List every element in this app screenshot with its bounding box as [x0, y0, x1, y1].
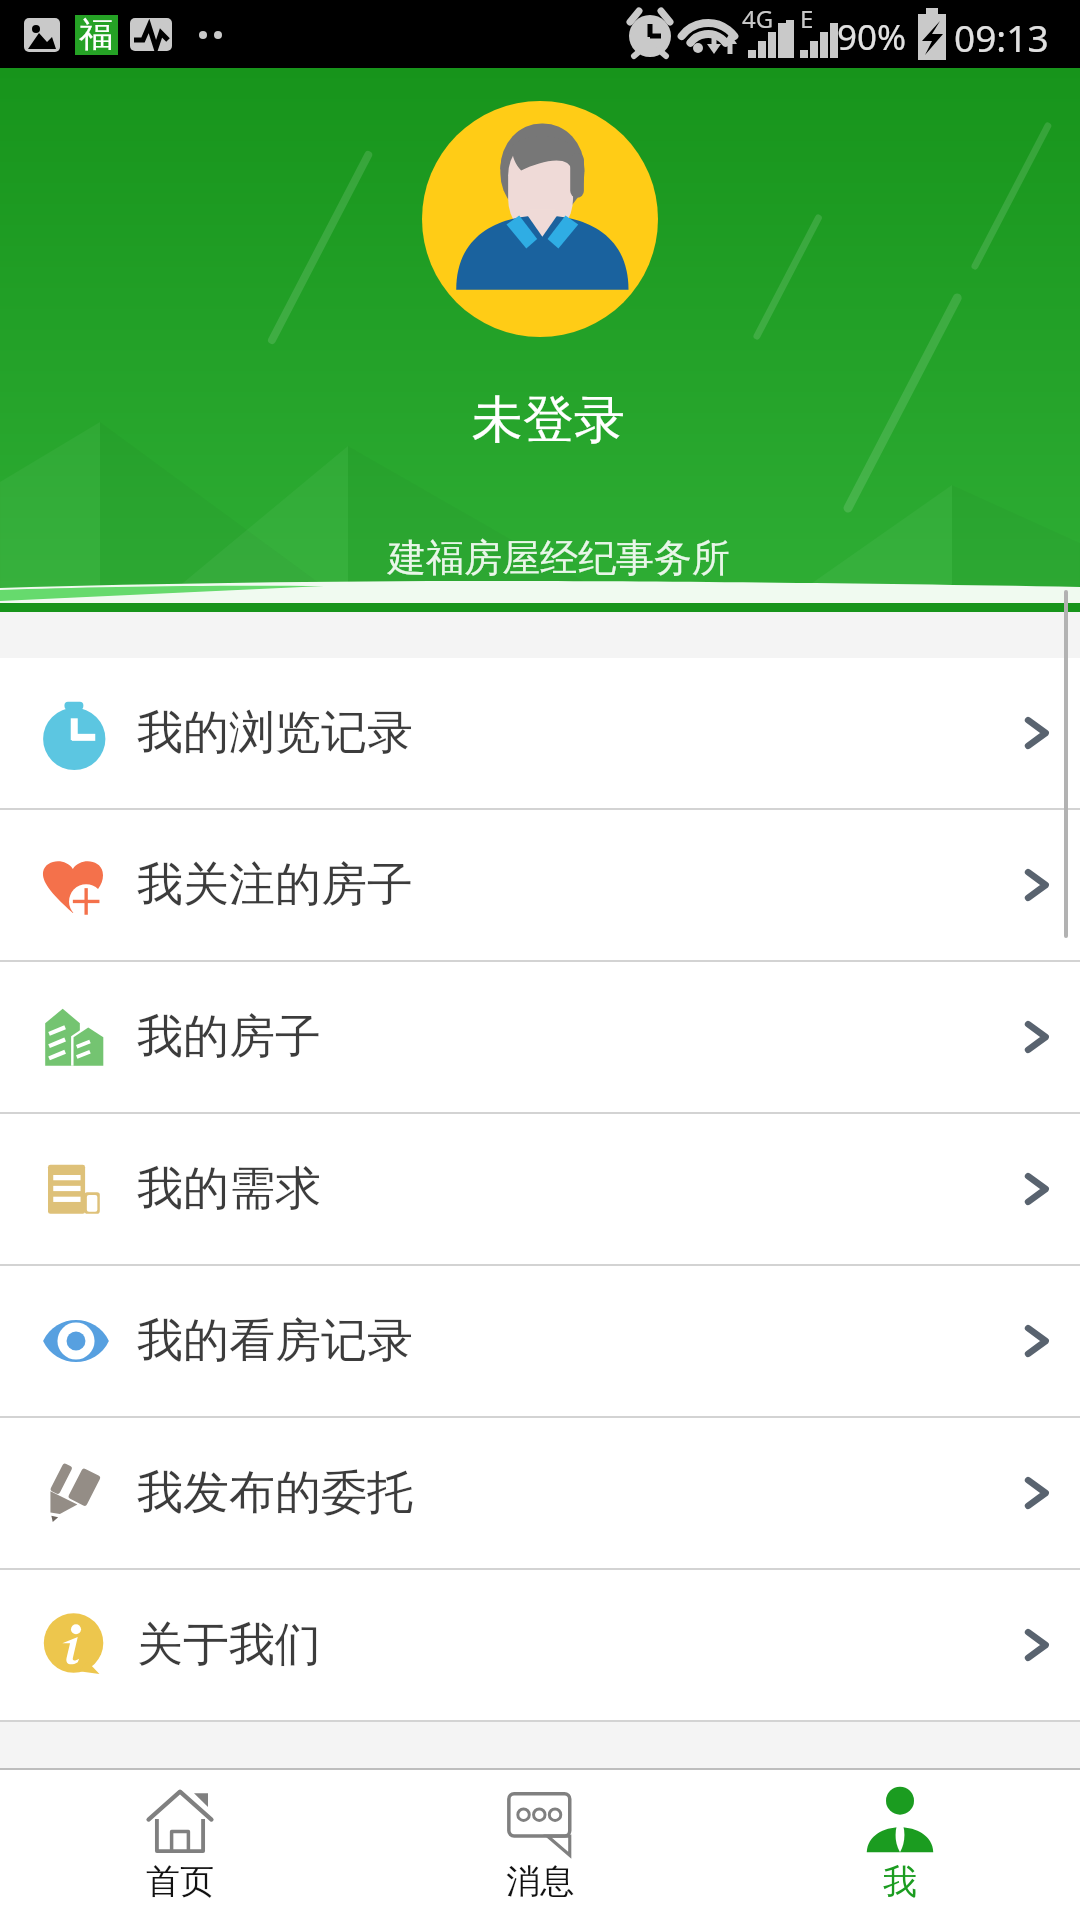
button[interactable]: 我发布的委托 — [0, 1418, 1080, 1568]
button[interactable]: 头像 Avatar — [422, 101, 658, 337]
staticText: 未登录 — [472, 388, 625, 452]
button[interactable]: 我的浏览记录 — [0, 658, 1080, 808]
button[interactable]: 首页 — [0, 1768, 360, 1920]
button[interactable]: 消息 — [360, 1768, 720, 1920]
button[interactable]: 我的需求 — [0, 1114, 1080, 1264]
staticText: 我的需求 — [137, 1160, 321, 1218]
staticText: 消息 — [506, 1860, 574, 1903]
staticText: 我 — [883, 1860, 917, 1903]
staticText: 90% — [837, 13, 907, 61]
staticText: 首页 — [146, 1860, 214, 1903]
staticText: 建福房屋经纪事务所 — [388, 534, 730, 582]
staticText: 4G — [742, 2, 774, 35]
staticText: 我发布的委托 — [137, 1464, 413, 1522]
staticText: 我的房子 — [137, 1008, 321, 1066]
button[interactable]: 关于我们 — [0, 1570, 1080, 1720]
staticText: 我的浏览记录 — [137, 704, 413, 762]
button[interactable]: 我关注的房子 — [0, 810, 1080, 960]
button[interactable]: 我的房子 — [0, 962, 1080, 1112]
button[interactable]: 我的看房记录 — [0, 1266, 1080, 1416]
staticText: 福 — [79, 13, 113, 56]
staticText: E — [800, 2, 814, 35]
staticText: 我的看房记录 — [137, 1312, 413, 1370]
staticText: 我关注的房子 — [137, 856, 413, 914]
staticText: 09:13 — [954, 12, 1049, 62]
staticText: 关于我们 — [137, 1616, 321, 1674]
button[interactable]: 我 — [720, 1768, 1080, 1920]
